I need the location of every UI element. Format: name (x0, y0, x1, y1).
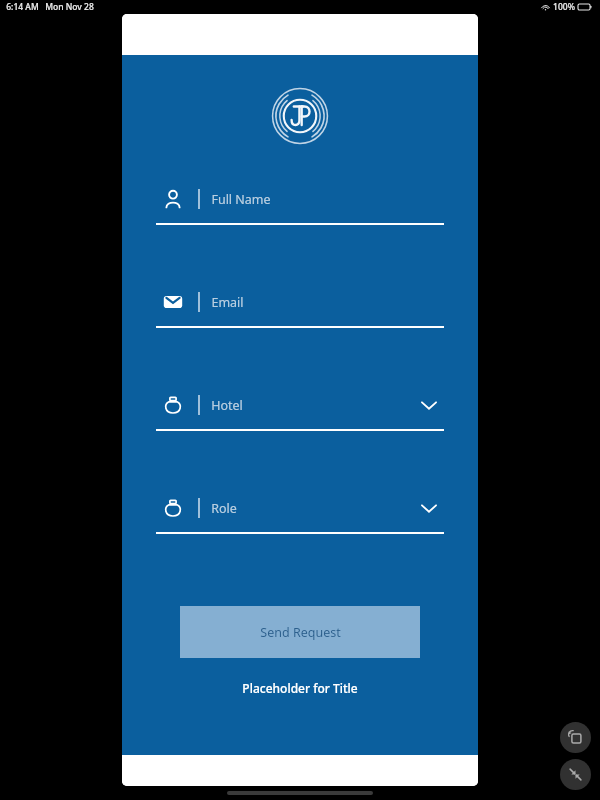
staticText: Mon Nov 28 (45, 1, 94, 13)
staticText: Role (211, 500, 237, 517)
button[interactable]: Rotate (560, 722, 591, 753)
button[interactable]: Hotel (156, 390, 444, 431)
button[interactable]: Email (156, 287, 444, 328)
button[interactable]: Send Request (180, 606, 420, 658)
staticText: Placeholder for Title (242, 680, 358, 696)
staticText: 100% (553, 1, 575, 13)
staticText: Full Name (211, 191, 271, 208)
button[interactable]: Role (156, 493, 444, 534)
button[interactable]: Full Name (156, 184, 444, 225)
staticText: Email (211, 294, 244, 311)
button[interactable]: Minimize (560, 759, 591, 790)
staticText: Hotel (211, 397, 243, 414)
staticText: 6:14 AM (6, 1, 39, 13)
staticText: Send Request (260, 624, 341, 641)
